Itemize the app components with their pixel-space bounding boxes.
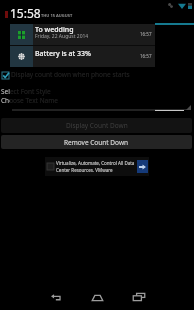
button[interactable]: Virtualize, Automate, Control All Data (45, 157, 149, 176)
staticText: 16:57 (140, 53, 152, 59)
button[interactable]: Remove Count Down (1, 135, 192, 149)
staticText: Display Count Down (66, 121, 128, 130)
staticText: Choose Text Name (1, 96, 58, 105)
staticText: 15:58 (10, 5, 41, 21)
staticText: 16:57 (140, 31, 152, 37)
staticText: THU 15 AUGUST (41, 13, 73, 18)
staticText: Virtualize, Automate, Control All Data (56, 160, 135, 166)
button[interactable]: Back (44, 287, 68, 307)
button[interactable]: To wedding (10, 24, 155, 45)
staticText: Select Font Style (1, 87, 51, 96)
staticText: Battery is at 33% (35, 49, 92, 59)
staticText: Center Resources. VMware (56, 167, 113, 173)
button[interactable]: Battery is at 33% (10, 46, 155, 67)
staticText: Remove Count Down (64, 138, 129, 147)
button[interactable]: Display Count Down (1, 118, 192, 133)
staticText: Display count down when phone starts (11, 70, 130, 79)
staticText: Friday, 22 August 2014 (35, 33, 89, 40)
button[interactable]: Home (85, 287, 109, 307)
button[interactable]: Recent apps (127, 287, 151, 307)
staticText: To wedding (35, 25, 74, 35)
